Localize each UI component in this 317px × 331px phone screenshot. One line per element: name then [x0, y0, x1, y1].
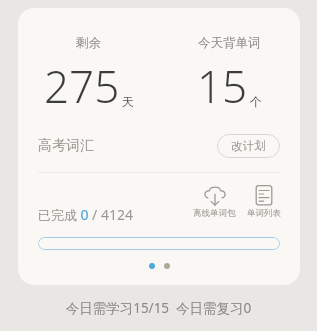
staticText: 15 [197, 56, 248, 116]
button[interactable]: 离线单词包 [190, 183, 239, 221]
button[interactable] [164, 263, 170, 269]
staticText: 改计划 [231, 139, 266, 153]
other: 离线单词包 [203, 185, 227, 206]
staticText: 天 [122, 94, 134, 109]
staticText: 剩余 [76, 35, 101, 51]
staticText: 已完成 0 / 4124 [38, 205, 133, 224]
staticText: 单词列表 [247, 208, 281, 219]
staticText: 离线单词包 [193, 208, 236, 219]
button[interactable] [38, 237, 280, 250]
button[interactable]: 单词列表 [244, 183, 284, 221]
other: 单词列表 [254, 185, 274, 206]
staticText: 高考词汇 [38, 137, 94, 155]
staticText: 今日需学习15/15 今日需复习0 [0, 299, 317, 317]
button[interactable] [149, 263, 155, 269]
staticText: 个 [250, 94, 262, 109]
staticText: 今天背单词 [198, 35, 261, 51]
button[interactable]: 改计划 [217, 134, 280, 158]
staticText: 275 [44, 56, 120, 116]
